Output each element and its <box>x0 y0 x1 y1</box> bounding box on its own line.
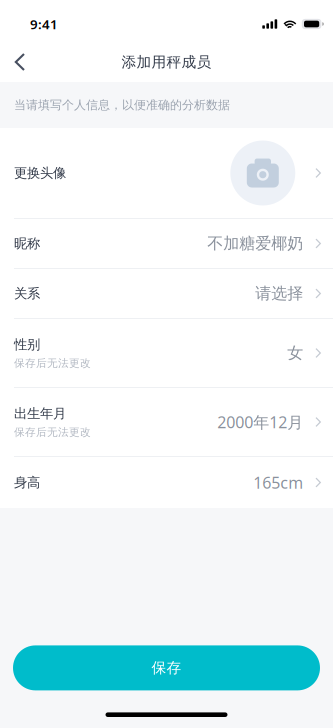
staticText: 请选择 <box>255 284 303 303</box>
staticText: 当请填写个人信息，以便准确的分析数据 <box>14 98 230 112</box>
staticText: 添加用秤成员 <box>121 53 211 71</box>
button[interactable]: 更换头像 <box>0 128 333 218</box>
button[interactable]: 关系 <box>0 269 333 318</box>
staticText: 9:41 <box>30 15 58 33</box>
button[interactable]: Back <box>0 42 44 82</box>
button[interactable]: 身高 <box>0 457 333 508</box>
staticText: 保存 <box>151 659 181 677</box>
staticText: 保存后无法更改 <box>14 357 91 370</box>
button[interactable]: 出生年月 <box>0 388 333 456</box>
staticText: 关系 <box>14 285 40 302</box>
staticText: 2000年12月 <box>217 411 303 433</box>
staticText: 更换头像 <box>14 165 66 181</box>
staticText: 出生年月 <box>14 405 66 422</box>
staticText: 身高 <box>14 474 40 491</box>
staticText: 165cm <box>253 472 303 493</box>
button[interactable]: 昵称 <box>0 219 333 268</box>
staticText: 不加糖爱椰奶 <box>207 234 303 253</box>
staticText: 性别 <box>14 336 40 353</box>
button[interactable]: 保存 <box>13 645 320 690</box>
staticText: 昵称 <box>14 235 40 252</box>
staticText: 保存后无法更改 <box>14 426 91 439</box>
button[interactable]: 性别 <box>0 319 333 387</box>
staticText: 女 <box>287 343 303 363</box>
